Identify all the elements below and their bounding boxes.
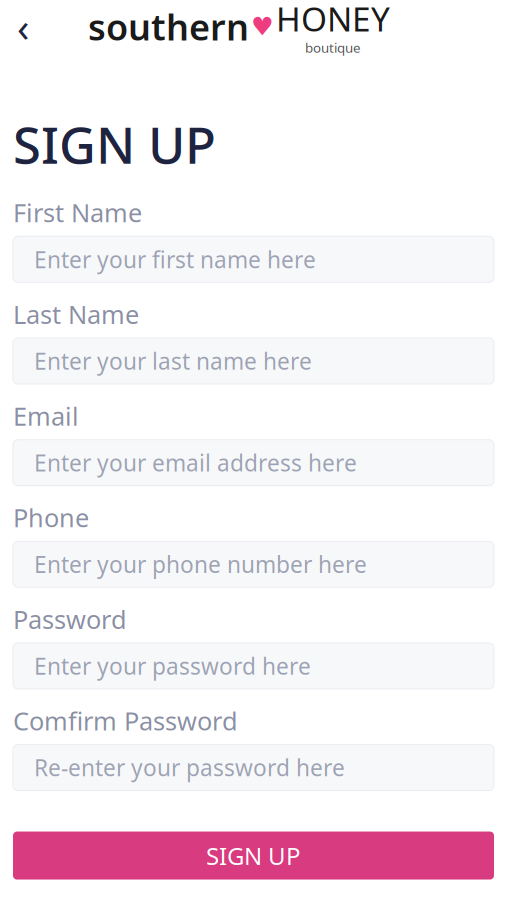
button[interactable]: Enter your last name here	[13, 338, 494, 384]
button[interactable]: Enter your phone number here	[13, 541, 494, 587]
staticText: First Name	[13, 196, 142, 229]
staticText: Email	[13, 399, 79, 433]
staticText: ♥	[251, 12, 274, 41]
staticText: Enter your first name here	[34, 244, 316, 274]
button[interactable]: Enter your email address here	[13, 440, 494, 486]
staticText: Password	[13, 602, 127, 636]
staticText: Last Name	[13, 297, 139, 331]
button[interactable]: Re-enter your password here	[13, 745, 494, 791]
staticText: southern	[88, 2, 249, 50]
staticText: Enter your password here	[34, 651, 311, 681]
staticText: ‹	[17, 0, 29, 53]
staticText: SIGN UP	[206, 840, 301, 871]
staticText: SIGN UP	[13, 110, 216, 178]
staticText: Enter your last name here	[34, 346, 312, 376]
staticText: Comfirm Password	[13, 704, 238, 737]
staticText: boutique	[305, 39, 361, 56]
staticText: Enter your email address here	[34, 448, 357, 478]
button[interactable]: Back	[0, 3, 46, 49]
staticText: HONEY	[276, 0, 390, 41]
staticText: Phone	[13, 501, 89, 534]
button[interactable]: SIGN UP	[13, 832, 494, 880]
button[interactable]: Enter your first name here	[13, 236, 494, 282]
staticText: Enter your phone number here	[34, 549, 367, 579]
button[interactable]: Enter your password here	[13, 643, 494, 689]
staticText: Re-enter your password here	[34, 752, 345, 783]
